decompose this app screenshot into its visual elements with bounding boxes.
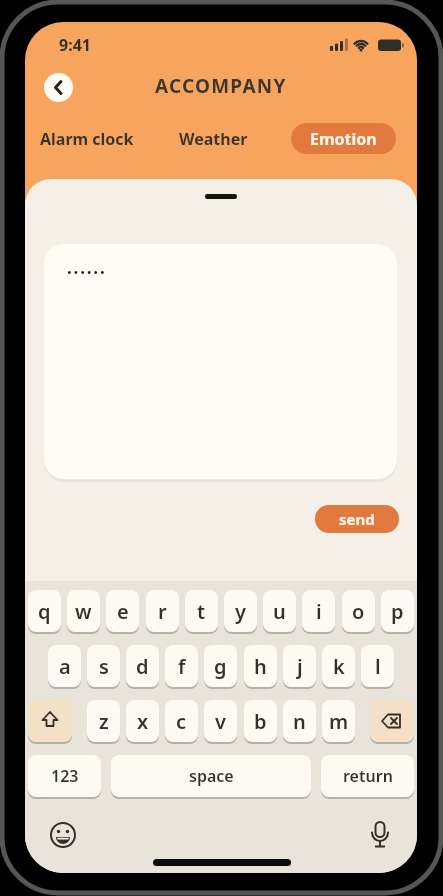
button[interactable]: h [244,645,277,687]
button[interactable]: d [126,645,159,687]
staticText: q [38,598,51,625]
button[interactable]: 123 [28,755,101,797]
button[interactable]: ...... [44,244,397,479]
button[interactable]: m [322,700,355,742]
button[interactable]: c [165,700,198,742]
staticText: h [254,653,267,680]
button[interactable]: x [126,700,159,742]
button[interactable]: q [28,590,61,632]
button[interactable]: j [283,645,316,687]
button[interactable]: z [87,700,120,742]
button[interactable]: r [146,590,179,632]
button[interactable] [44,73,73,102]
button[interactable]: Alarm clock [27,123,147,154]
button[interactable]: o [342,590,375,632]
staticText: f [178,653,186,680]
staticText: l [375,653,381,680]
staticText: v [215,708,226,735]
button[interactable]: return [321,755,414,797]
staticText: Alarm clock [40,128,134,150]
staticText: d [136,653,149,680]
button[interactable]: e [106,590,139,632]
button[interactable]: b [244,700,277,742]
staticText: z [99,708,109,735]
button[interactable]: u [263,590,296,632]
staticText: i [316,598,322,625]
staticText: x [137,708,149,735]
button[interactable] [47,819,79,851]
button[interactable]: t [185,590,218,632]
staticText: t [197,598,206,625]
button[interactable] [370,700,414,742]
button[interactable]: a [48,645,81,687]
staticText: m [329,708,349,735]
staticText: u [273,598,286,625]
staticText: j [297,653,303,680]
button[interactable]: i [302,590,335,632]
button[interactable] [28,700,72,742]
button[interactable]: send [315,505,399,533]
staticText: 123 [51,765,79,787]
staticText: Emotion [310,128,377,150]
staticText: ...... [67,256,107,279]
button[interactable]: k [322,645,355,687]
button[interactable] [364,819,396,853]
staticText: Weather [179,128,248,150]
staticText: g [214,653,227,680]
button[interactable]: n [283,700,316,742]
staticText: c [176,708,187,735]
button[interactable]: y [224,590,257,632]
staticText: space [189,765,234,787]
staticText: o [352,598,365,625]
staticText: send [339,509,375,529]
staticText: p [391,598,404,625]
staticText: a [59,653,71,680]
staticText: y [235,598,246,625]
staticText: ACCOMPANY [155,73,287,99]
button[interactable]: f [165,645,198,687]
button[interactable]: v [204,700,237,742]
button[interactable]: Weather [161,123,266,154]
button[interactable]: g [204,645,237,687]
staticText: r [158,598,167,625]
staticText: return [343,765,393,787]
button[interactable]: Emotion [291,123,396,154]
staticText: 9:41 [59,34,91,56]
staticText: k [333,653,345,680]
button[interactable]: space [111,755,311,797]
button[interactable]: w [67,590,100,632]
staticText: s [99,653,109,680]
staticText: w [75,598,92,625]
staticText: n [293,708,306,735]
button[interactable]: p [381,590,414,632]
staticText: e [117,598,129,625]
button[interactable]: s [87,645,120,687]
button[interactable]: l [361,645,394,687]
staticText: b [254,708,267,735]
